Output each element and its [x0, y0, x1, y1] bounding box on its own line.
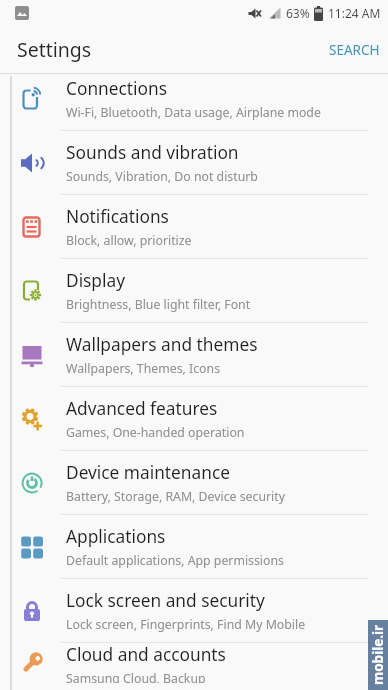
staticText: mobile.ir [369, 624, 387, 685]
staticText: Games, One-handed operation [66, 424, 245, 441]
staticText: Lock screen and security [66, 589, 265, 613]
staticText: Sounds, Vibration, Do not disturb [66, 168, 258, 185]
staticText: Applications [66, 525, 166, 549]
staticText: Connections [66, 77, 167, 101]
staticText: Device maintenance [66, 461, 231, 485]
button[interactable]: Wallpapers and themes [0, 323, 388, 386]
staticText: 63% [286, 5, 310, 21]
staticText: Default applications, App permissions [66, 552, 284, 569]
staticText: Block, allow, prioritize [66, 232, 192, 249]
staticText: Wallpapers and themes [66, 333, 258, 357]
staticText: SEARCH [329, 41, 380, 59]
staticText: 11:24 AM [328, 5, 381, 21]
button[interactable]: Advanced features [0, 387, 388, 450]
staticText: Settings [17, 36, 92, 63]
staticText: Wi-Fi, Bluetooth, Data usage, Airplane m… [66, 104, 321, 121]
staticText: Battery, Storage, RAM, Device security [66, 488, 285, 505]
staticText: Display [66, 269, 125, 293]
button[interactable]: Notifications [0, 195, 388, 258]
button[interactable]: Sounds and vibration [0, 131, 388, 194]
staticText: Notifications [66, 205, 169, 229]
button[interactable]: Connections [0, 67, 388, 130]
button[interactable]: Applications [0, 515, 388, 578]
staticText: Brightness, Blue light filter, Font [66, 296, 251, 313]
button[interactable]: Display [0, 259, 388, 322]
button[interactable]: Device maintenance [0, 451, 388, 514]
button[interactable]: Cloud and accounts [0, 643, 388, 683]
button[interactable]: Lock screen and security [0, 579, 388, 642]
button[interactable]: SEARCH [329, 41, 380, 59]
staticText: Sounds and vibration [66, 141, 239, 165]
staticText: Samsung Cloud, Backup [66, 670, 206, 683]
staticText: Advanced features [66, 397, 218, 421]
staticText: Cloud and accounts [66, 643, 226, 667]
staticText: Wallpapers, Themes, Icons [66, 360, 221, 377]
staticText: Lock screen, Fingerprints, Find My Mobil… [66, 616, 306, 633]
